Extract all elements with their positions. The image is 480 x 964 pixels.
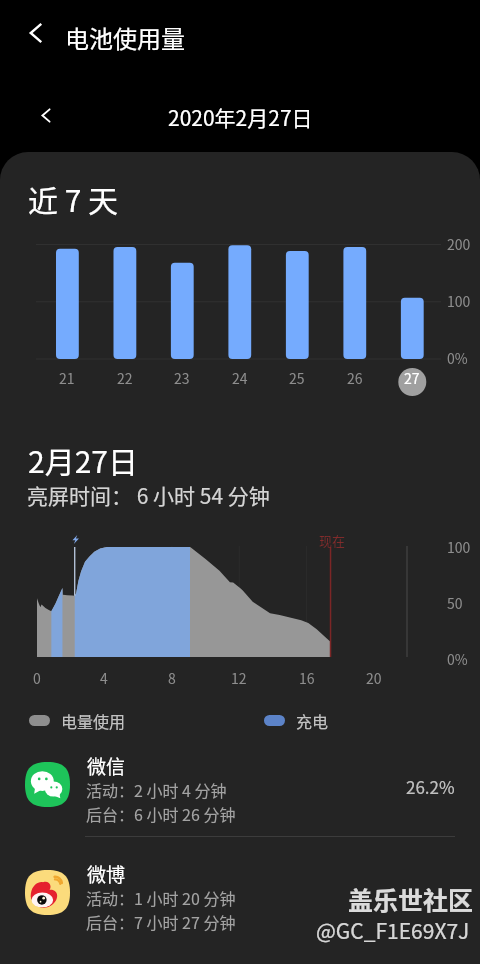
staticText: 200 xyxy=(447,234,471,254)
staticText: 26 xyxy=(347,368,363,388)
staticText: 充电 xyxy=(296,709,329,732)
staticText: 后台：7 小时 27 分钟 xyxy=(86,910,236,933)
button[interactable]: 微信 xyxy=(0,750,480,840)
staticText: 100 xyxy=(447,291,471,311)
staticText: 26.2% xyxy=(406,774,455,799)
staticText: 100 xyxy=(447,537,471,557)
staticText: 微信 xyxy=(87,752,126,780)
staticText: 后台：6 小时 26 分钟 xyxy=(86,802,236,825)
staticText: 23 xyxy=(174,368,190,388)
staticText: 24 xyxy=(232,368,248,388)
staticText: 电池使用量 xyxy=(65,20,185,55)
staticText: 27 xyxy=(404,368,420,388)
button[interactable]: Back xyxy=(14,11,58,55)
staticText: 活动：1 小时 20 分钟 xyxy=(86,886,236,909)
staticText: 16 xyxy=(299,668,315,688)
staticText: 现在 xyxy=(319,531,346,550)
staticText: 2月27日 xyxy=(28,438,138,481)
button[interactable]: Previous day xyxy=(28,98,62,132)
staticText: 近 7 天 xyxy=(28,177,119,220)
button[interactable]: 微博 xyxy=(0,858,480,948)
staticText: 盖乐世社区 xyxy=(348,881,474,917)
staticText: 0% xyxy=(447,649,468,669)
staticText: 活动：2 小时 4 分钟 xyxy=(86,778,227,801)
staticText: 亮屏时间： 6 小时 54 分钟 xyxy=(27,480,270,510)
staticText: 0% xyxy=(447,348,468,368)
staticText: 微博 xyxy=(87,860,126,888)
staticText: 0 xyxy=(33,668,41,688)
staticText: 21 xyxy=(59,368,75,388)
staticText: 25 xyxy=(289,368,305,388)
staticText: 12 xyxy=(231,668,247,688)
staticText: 电量使用 xyxy=(61,709,126,732)
staticText: 20 xyxy=(366,668,382,688)
staticText: 2020年2月27日 xyxy=(168,102,313,132)
staticText: 8 xyxy=(168,668,176,688)
staticText: 50 xyxy=(447,593,463,613)
staticText: 4 xyxy=(100,668,108,688)
staticText: @GC_F1E69X7J xyxy=(316,915,470,945)
staticText: 22 xyxy=(117,368,133,388)
